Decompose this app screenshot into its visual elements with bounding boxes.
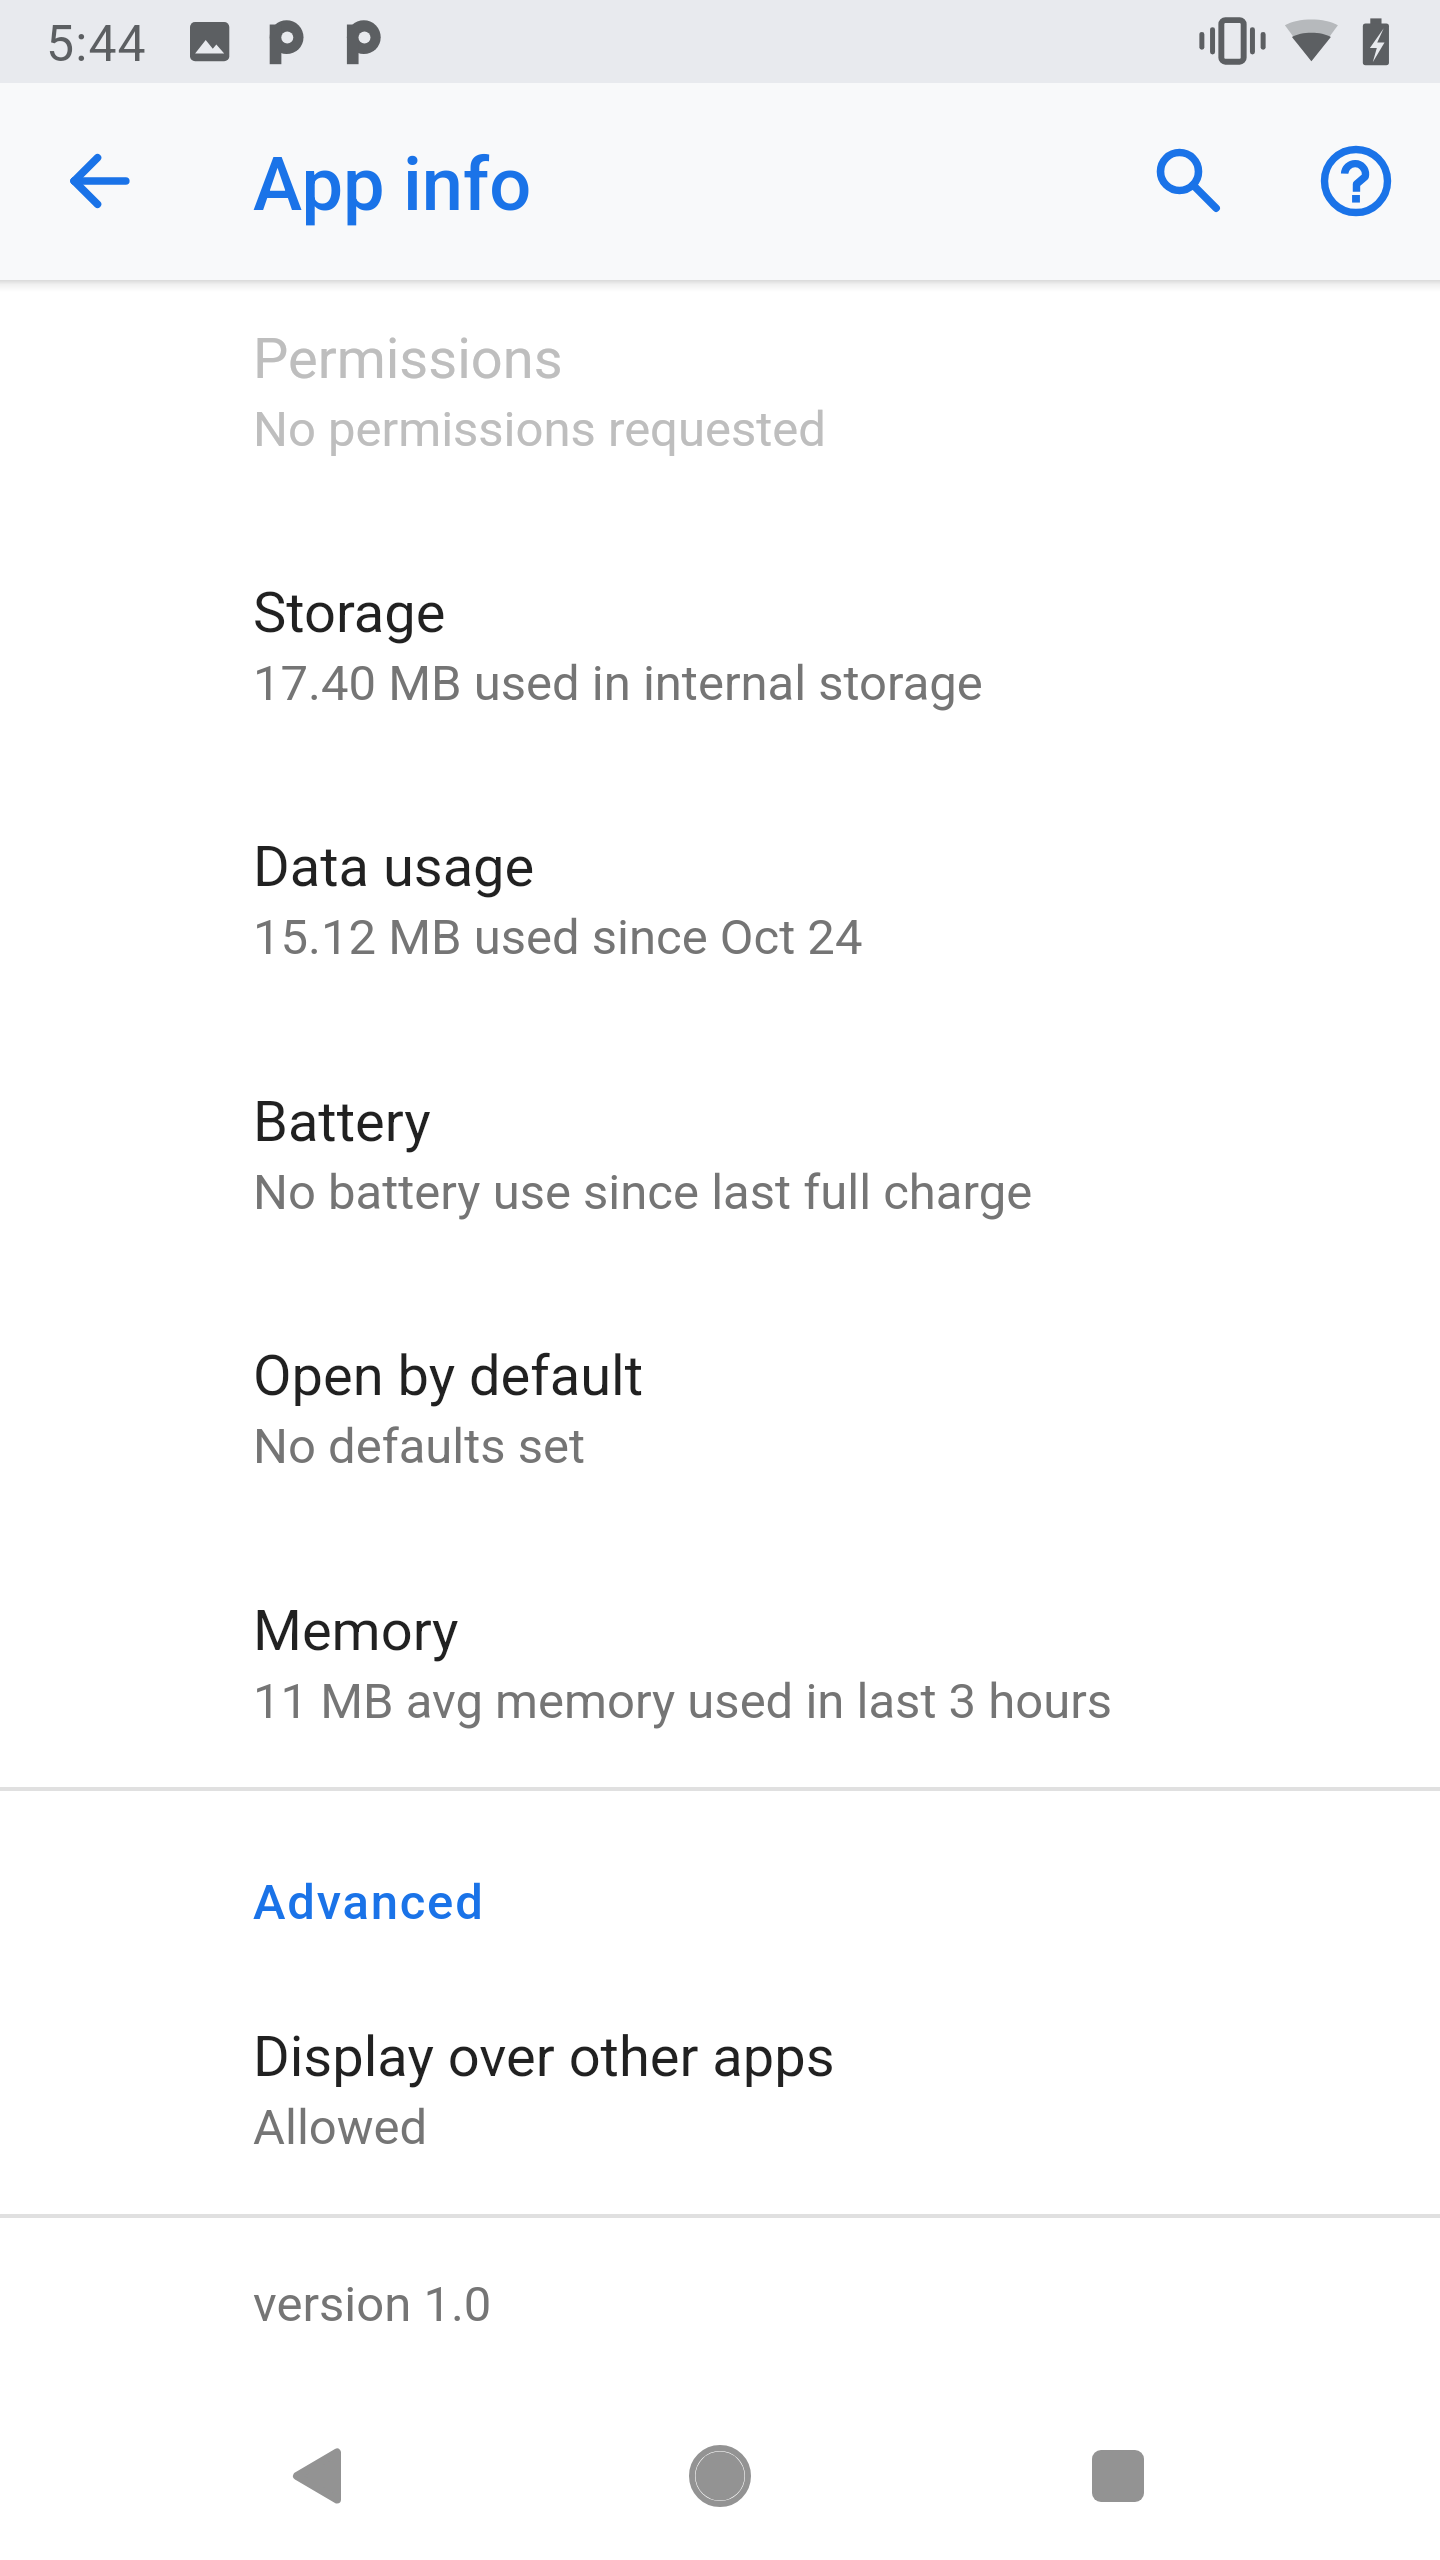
button[interactable]: Search — [1137, 139, 1221, 223]
staticText: Data usage — [253, 834, 535, 900]
staticText: 17.40 MB used in internal storage — [253, 655, 983, 712]
button[interactable]: Data usage — [0, 769, 1440, 1023]
staticText: No defaults set — [253, 1418, 586, 1475]
staticText: version 1.0 — [253, 2276, 492, 2333]
staticText: Allowed — [253, 2099, 428, 2156]
staticText: 15.12 MB used since Oct 24 — [253, 909, 863, 966]
staticText: Advanced — [253, 1874, 485, 1931]
staticText: Permissions — [253, 326, 563, 392]
button[interactable]: Back — [242, 2401, 392, 2551]
button[interactable]: Home — [645, 2401, 795, 2551]
staticText: No permissions requested — [253, 401, 826, 458]
staticText: Memory — [253, 1598, 459, 1664]
staticText: No battery use since last full charge — [253, 1164, 1033, 1221]
staticText: 11 MB avg memory used in last 3 hours — [253, 1673, 1113, 1730]
button[interactable]: Help — [1314, 139, 1398, 223]
button[interactable]: Open by default — [0, 1278, 1440, 1532]
button[interactable]: Storage — [0, 515, 1440, 769]
button[interactable]: Navigate up — [58, 139, 142, 223]
staticText: App info — [253, 141, 532, 228]
staticText: Storage — [253, 580, 446, 646]
button[interactable]: Battery — [0, 1024, 1440, 1278]
button[interactable]: Permissions — [0, 261, 1440, 515]
button[interactable]: Display over other apps — [0, 1975, 1440, 2214]
staticText: Display over other apps — [253, 2024, 835, 2090]
button[interactable]: Recent apps — [1043, 2401, 1193, 2551]
button[interactable]: Advanced — [0, 1791, 1440, 1975]
staticText: Open by default — [253, 1343, 644, 1409]
staticText: 5:44 — [46, 15, 147, 74]
button[interactable]: Memory — [0, 1533, 1440, 1787]
staticText: Battery — [253, 1089, 431, 1155]
